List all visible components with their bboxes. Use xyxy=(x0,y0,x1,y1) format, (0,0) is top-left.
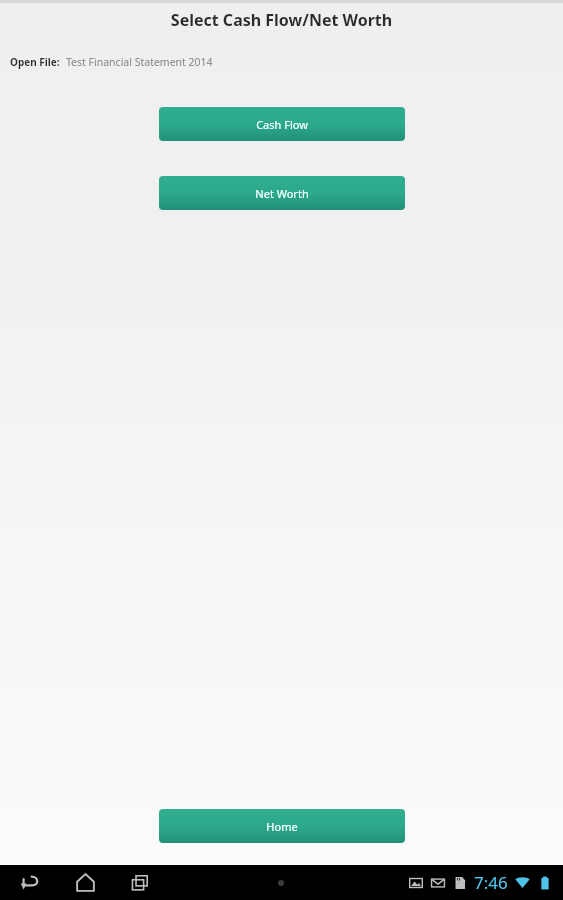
button[interactable]: Net Worth xyxy=(159,176,405,210)
button[interactable]: Home xyxy=(159,809,405,843)
staticText: 7:46 xyxy=(474,871,508,894)
staticText: Home xyxy=(266,819,298,834)
staticText: Select Cash Flow/Net Worth xyxy=(0,9,563,31)
button[interactable]: Back xyxy=(12,865,48,900)
staticText: Open File: xyxy=(10,55,60,69)
staticText: Net Worth xyxy=(255,186,309,201)
button[interactable]: Recent apps xyxy=(122,865,158,900)
staticText: Test Financial Statement 2014 xyxy=(66,55,213,69)
staticText: Cash Flow xyxy=(256,117,308,132)
button[interactable]: Cash Flow xyxy=(159,107,405,141)
button[interactable]: Home xyxy=(67,865,103,900)
